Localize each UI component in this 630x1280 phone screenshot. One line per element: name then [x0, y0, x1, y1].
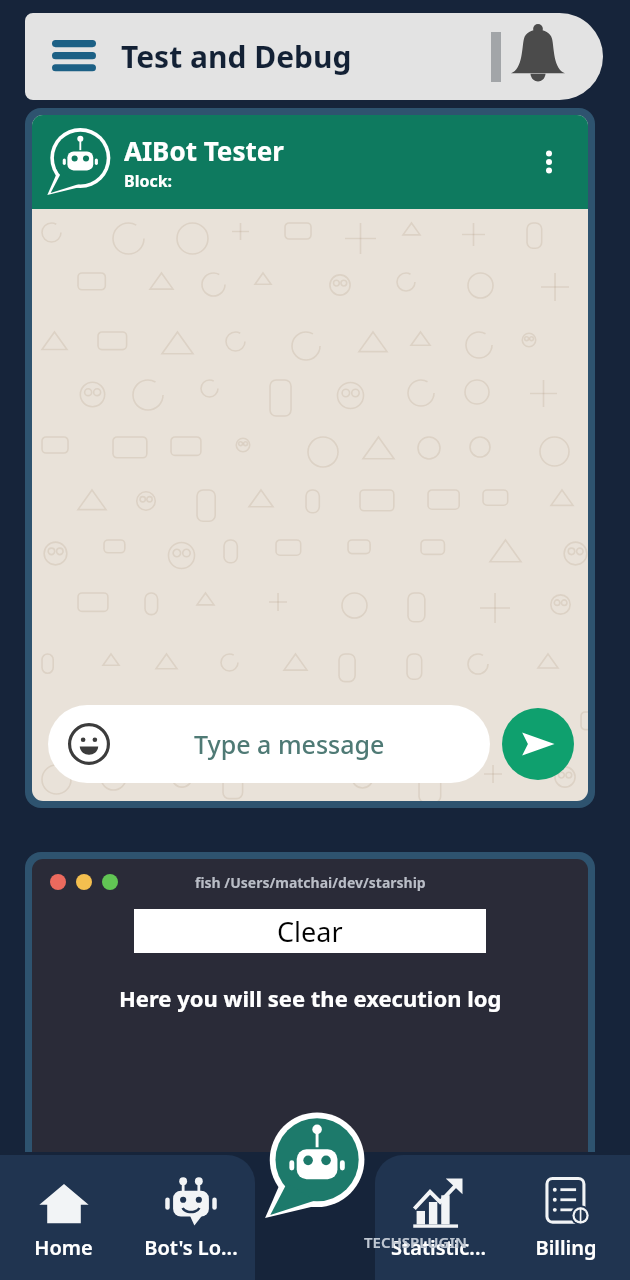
- button[interactable]: Billing: [502, 1155, 630, 1280]
- button[interactable]: Notifications: [507, 26, 569, 88]
- staticText: TECHSPLUGIN: [364, 1232, 467, 1252]
- staticText: Test and Debug: [121, 36, 352, 77]
- button[interactable]: Clear: [134, 909, 486, 953]
- button[interactable]: More options: [522, 135, 576, 189]
- button[interactable]: Send message: [502, 708, 574, 780]
- staticText: Clear: [277, 913, 343, 950]
- staticText: AIBot Tester: [124, 133, 284, 168]
- button[interactable]: Home: [0, 1155, 127, 1280]
- button[interactable]: Type a message: [48, 705, 490, 783]
- staticText: fish /Users/matchai/dev/starship: [195, 873, 426, 892]
- staticText: Home: [34, 1234, 93, 1261]
- button[interactable]: Open navigation menu: [45, 28, 103, 86]
- staticText: Statistic...: [391, 1234, 486, 1261]
- button[interactable]: Statistic...: [375, 1155, 502, 1280]
- staticText: Bot's Lo...: [144, 1234, 238, 1261]
- button[interactable]: Bot's Lo...: [127, 1155, 255, 1280]
- staticText: Type a message: [194, 727, 385, 761]
- button[interactable]: AI Bot chat: [263, 1114, 367, 1218]
- staticText: Block:: [124, 170, 173, 192]
- staticText: Billing: [535, 1234, 597, 1261]
- staticText: Here you will see the execution log: [119, 983, 502, 1013]
